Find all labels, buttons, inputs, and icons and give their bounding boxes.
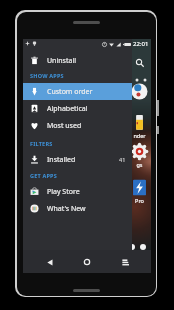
staticText: Alphabetical: [47, 104, 88, 114]
button[interactable]: Custom order: [23, 83, 132, 100]
staticText: gs: [136, 161, 143, 168]
staticText: GET APPS: [30, 172, 57, 179]
button[interactable]: Search: [132, 55, 148, 71]
staticText: Play Store: [47, 187, 80, 197]
staticText: Most used: [47, 121, 82, 131]
button[interactable]: App: [126, 143, 152, 168]
staticText: Uninstall: [47, 56, 76, 66]
button[interactable]: App: [126, 83, 152, 100]
button[interactable]: Play Store: [23, 183, 132, 200]
staticText: Custom order: [47, 87, 93, 97]
button[interactable]: Back: [39, 251, 61, 273]
staticText: 41: [119, 156, 126, 163]
staticText: nder: [133, 132, 146, 139]
staticText: 22:01: [133, 40, 149, 48]
button[interactable]: What's New: [23, 200, 132, 217]
button[interactable]: Recents: [114, 251, 136, 273]
button[interactable]: Most used: [23, 117, 132, 134]
staticText: FILTERS: [30, 140, 53, 147]
staticText: What's New: [47, 204, 86, 214]
button[interactable]: App: [126, 114, 152, 139]
button[interactable]: Uninstall: [23, 52, 132, 69]
button[interactable]: App: [126, 179, 152, 204]
staticText: Pro: [135, 197, 144, 204]
button[interactable]: Alphabetical: [23, 100, 132, 117]
staticText: Installed: [47, 155, 76, 165]
staticText: SHOW APPS: [30, 72, 64, 79]
button[interactable]: Home: [76, 251, 98, 273]
button[interactable]: Installed: [23, 151, 132, 168]
